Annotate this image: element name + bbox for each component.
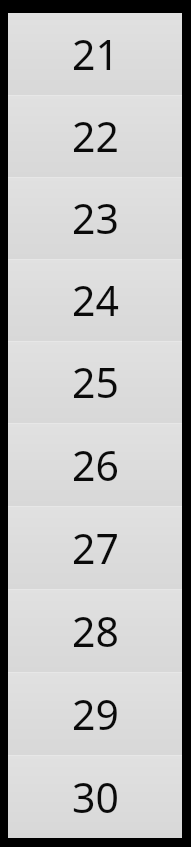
staticText: 24: [72, 272, 119, 328]
staticText: 21: [72, 26, 119, 82]
staticText: 29: [72, 686, 119, 742]
button[interactable]: 22: [8, 95, 182, 177]
button[interactable]: 27: [8, 506, 182, 589]
button[interactable]: 28: [8, 589, 182, 672]
button[interactable]: 21: [8, 13, 182, 95]
staticText: 28: [72, 603, 119, 659]
button[interactable]: 29: [8, 672, 182, 755]
staticText: 26: [72, 437, 119, 493]
staticText: 22: [72, 108, 119, 164]
staticText: 23: [72, 190, 119, 246]
button[interactable]: 23: [8, 177, 182, 259]
staticText: 25: [72, 354, 119, 410]
button[interactable]: 26: [8, 423, 182, 506]
staticText: 27: [72, 520, 119, 576]
button[interactable]: 30: [8, 755, 182, 838]
staticText: 30: [72, 769, 119, 825]
button[interactable]: 25: [8, 341, 182, 423]
button[interactable]: 24: [8, 259, 182, 341]
